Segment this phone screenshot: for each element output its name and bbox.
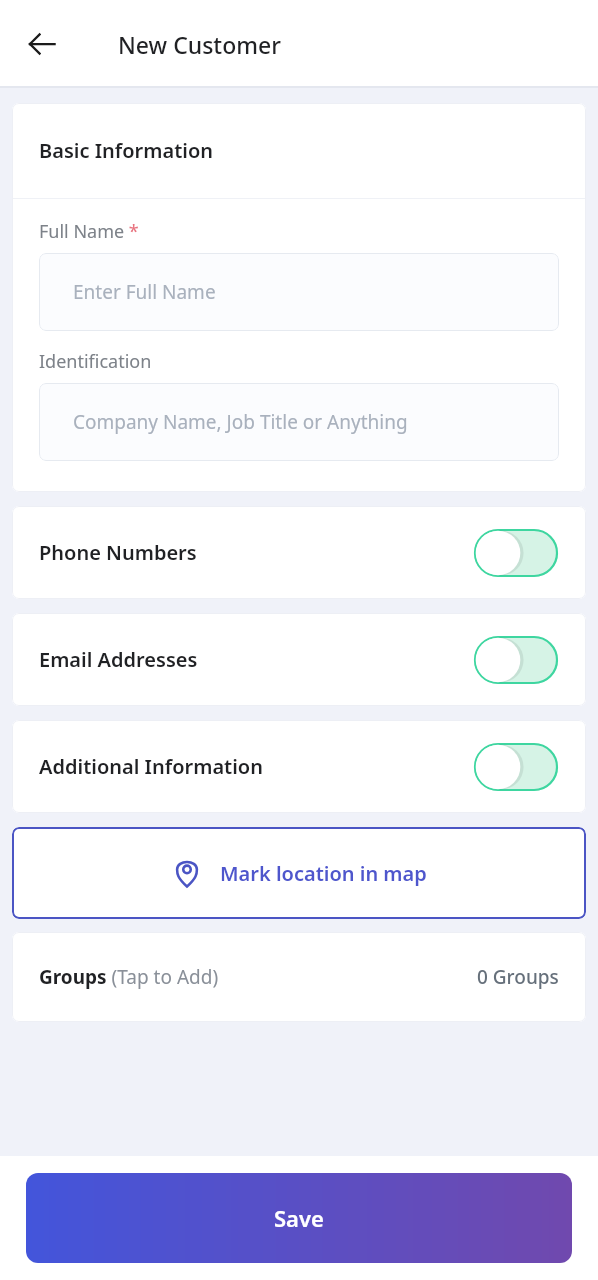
button[interactable]: Toggle	[474, 636, 558, 684]
button[interactable]: Additional Information	[12, 720, 586, 813]
button[interactable]: Company Name, Job Title or Anything	[39, 383, 559, 461]
staticText: Full Name *	[39, 219, 139, 244]
staticText: Save	[274, 1203, 324, 1233]
staticText: Email Addresses	[39, 646, 474, 673]
button[interactable]: Email Addresses	[12, 613, 586, 706]
button[interactable]: Groups (Tap to Add)	[12, 932, 586, 1022]
button[interactable]: Mark location in map	[12, 827, 586, 919]
staticText: Basic Information	[39, 137, 214, 164]
button[interactable]: Back	[14, 16, 70, 72]
button[interactable]: Toggle	[474, 529, 558, 577]
staticText: Groups (Tap to Add)	[39, 964, 477, 990]
staticText: Identification	[39, 349, 152, 374]
staticText: Phone Numbers	[39, 539, 474, 566]
staticText: Mark location in map	[220, 860, 427, 887]
staticText: New Customer	[118, 29, 281, 60]
staticText: Additional Information	[39, 753, 474, 780]
staticText: Company Name, Job Title or Anything	[73, 409, 408, 435]
button[interactable]: Phone Numbers	[12, 506, 586, 599]
button[interactable]: Enter Full Name	[39, 253, 559, 331]
button[interactable]: Save	[26, 1173, 572, 1263]
button[interactable]: Toggle	[474, 743, 558, 791]
staticText: Enter Full Name	[73, 279, 216, 305]
staticText: 0 Groups	[477, 964, 559, 990]
